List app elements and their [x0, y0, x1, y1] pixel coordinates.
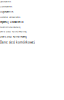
- staticText: Użytkownik: [0, 5, 12, 8]
- staticText: Użytkownik: [0, 10, 13, 13]
- staticText: Dane sieci komórkowej: [0, 35, 27, 38]
- staticText: Wyzeruj ustawienia: [0, 20, 23, 24]
- staticText: Wyzeruj ustawienia: [0, 15, 20, 18]
- staticText: DANE SIECI KOMÓRKOWEJ: [0, 30, 27, 33]
- staticText: DANE SIECI KOMÓRKOWEJ: [0, 26, 20, 28]
- staticText: Dane sieci komórkowej: [0, 40, 35, 44]
- staticText: Użytkownik: [0, 0, 11, 3]
